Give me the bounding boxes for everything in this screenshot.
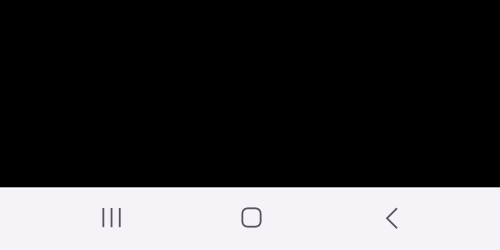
button[interactable]: Back xyxy=(343,189,439,250)
button[interactable]: Recents xyxy=(63,189,159,250)
button[interactable]: Home xyxy=(203,189,299,250)
